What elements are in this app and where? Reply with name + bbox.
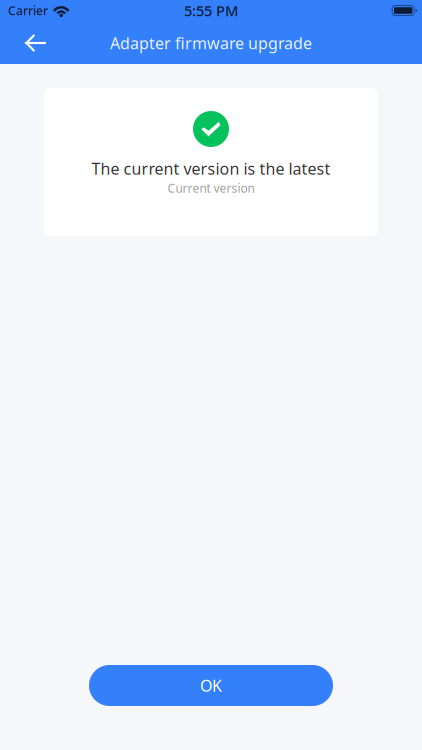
- button[interactable]: OK: [89, 665, 333, 706]
- button[interactable]: Back: [13, 21, 57, 65]
- staticText: 5:55 PM: [184, 1, 238, 20]
- staticText: OK: [200, 675, 222, 696]
- staticText: Current version: [167, 180, 254, 196]
- staticText: Carrier: [8, 2, 48, 18]
- staticText: The current version is the latest: [91, 158, 330, 179]
- staticText: Adapter firmware upgrade: [110, 32, 312, 54]
